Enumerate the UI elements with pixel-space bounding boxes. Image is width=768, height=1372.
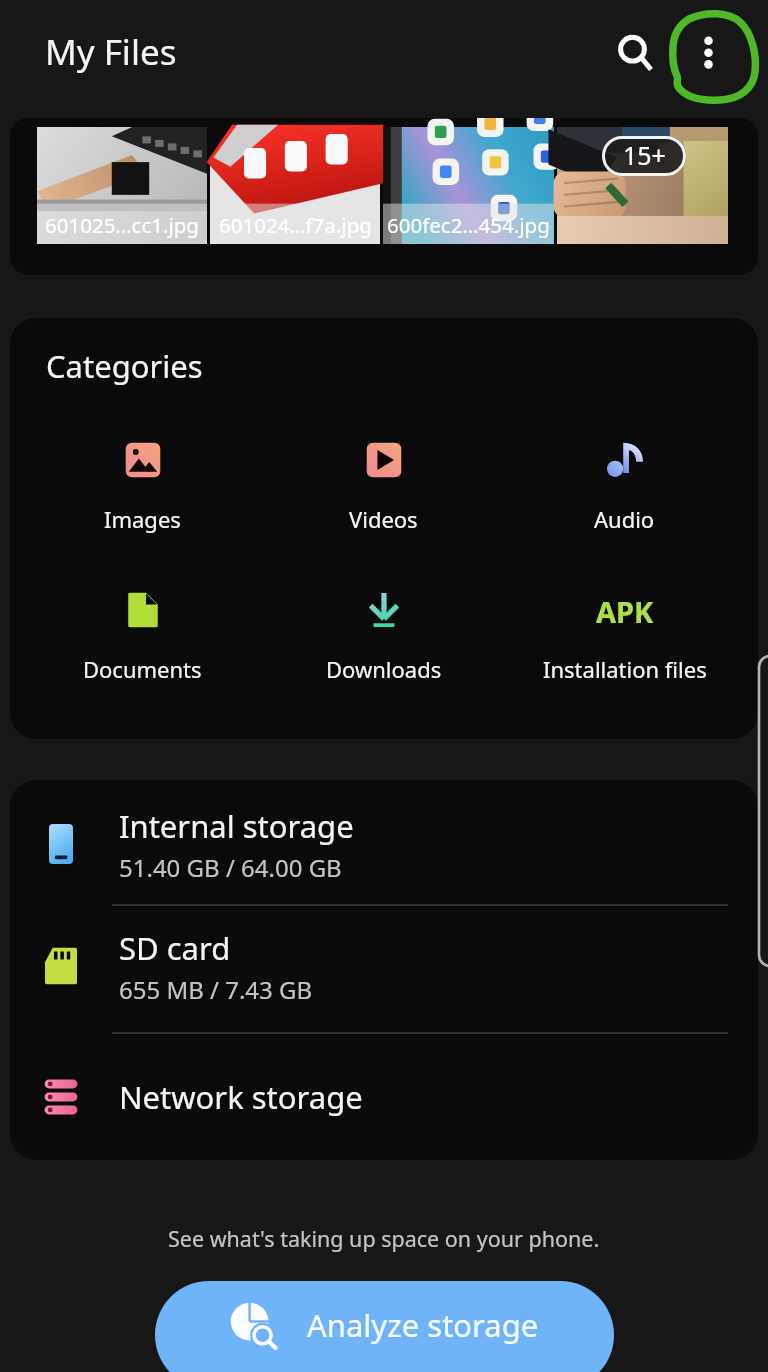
staticText: Documents bbox=[83, 654, 202, 684]
button[interactable]: 601024…f7a.jpg bbox=[210, 127, 380, 244]
staticText: Videos bbox=[349, 504, 418, 534]
staticText: APK bbox=[596, 592, 654, 628]
button[interactable]: Internal storage bbox=[10, 783, 758, 905]
button[interactable]: Analyze storage bbox=[155, 1281, 614, 1372]
staticText: Downloads bbox=[326, 654, 442, 684]
staticText: Installation files bbox=[543, 654, 707, 684]
staticText: Images bbox=[104, 504, 181, 534]
button[interactable]: 15 or more files bbox=[557, 127, 728, 244]
button[interactable]: Videos bbox=[263, 442, 504, 534]
button[interactable]: APK bbox=[504, 592, 745, 684]
button[interactable]: 600fec2…454.jpg bbox=[383, 127, 554, 244]
staticText: 51.40 GB / 64.00 GB bbox=[119, 851, 342, 884]
button[interactable]: 601025…cc1.jpg bbox=[37, 127, 207, 244]
staticText: 601025…cc1.jpg bbox=[45, 211, 199, 239]
button[interactable]: More options bbox=[679, 20, 738, 79]
button[interactable]: SD card bbox=[10, 905, 758, 1027]
staticText: Categories bbox=[46, 345, 203, 387]
staticText: See what's taking up space on your phone… bbox=[168, 1224, 600, 1253]
button[interactable]: Search bbox=[603, 20, 662, 79]
button[interactable]: Network storage bbox=[10, 1033, 758, 1160]
staticText: 655 MB / 7.43 GB bbox=[119, 973, 313, 1006]
staticText: Analyze storage bbox=[307, 1304, 539, 1346]
staticText: Internal storage bbox=[119, 805, 354, 847]
staticText: 601024…f7a.jpg bbox=[219, 211, 372, 239]
staticText: 600fec2…454.jpg bbox=[387, 211, 550, 239]
staticText: 15+ bbox=[623, 138, 666, 172]
staticText: SD card bbox=[119, 927, 231, 969]
staticText: My Files bbox=[45, 28, 177, 76]
button[interactable]: Images bbox=[22, 442, 263, 534]
staticText: Audio bbox=[594, 504, 655, 534]
button[interactable]: Audio bbox=[504, 442, 745, 534]
button[interactable]: Documents bbox=[22, 592, 263, 684]
button[interactable]: Downloads bbox=[263, 592, 504, 684]
staticText: Network storage bbox=[119, 1076, 363, 1118]
